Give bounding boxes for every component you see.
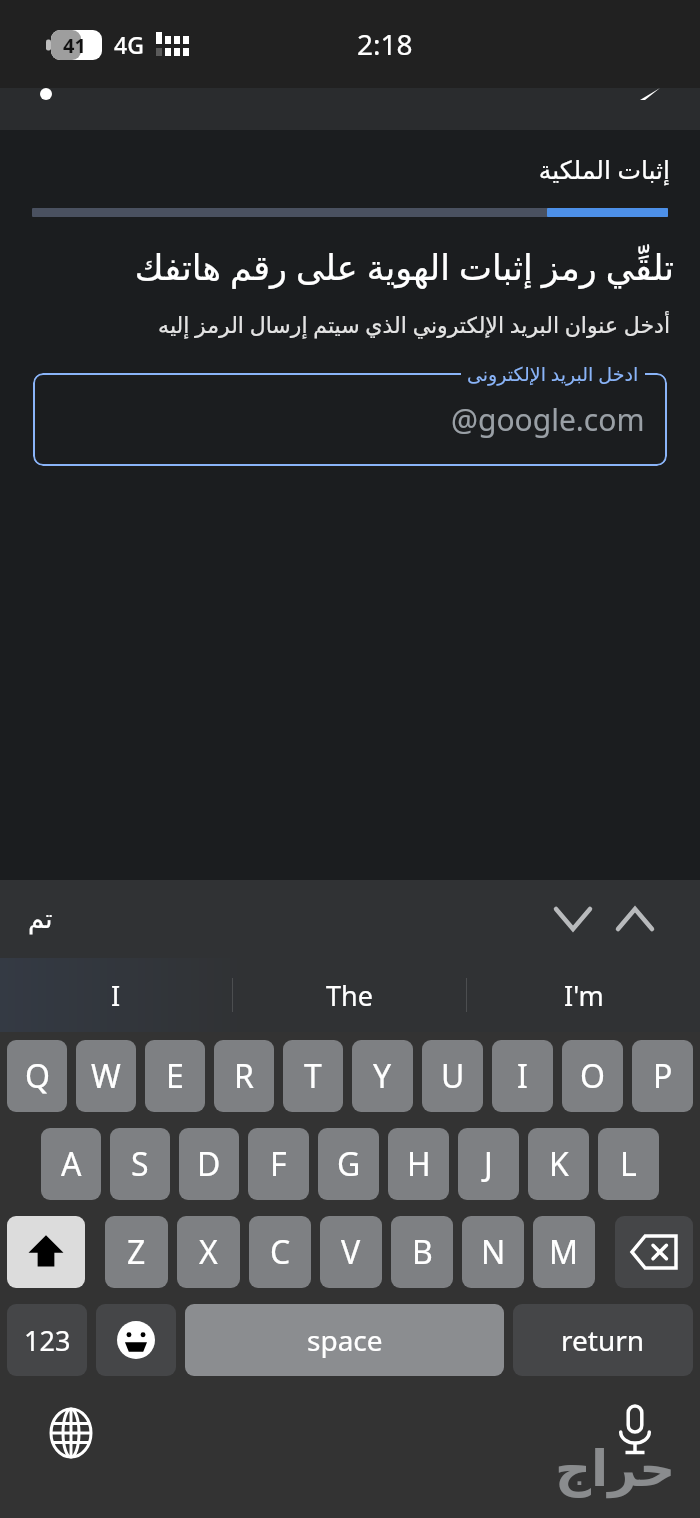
staticText: K <box>549 1142 569 1186</box>
button[interactable]: Z <box>105 1216 168 1288</box>
staticText: A <box>61 1142 82 1186</box>
staticText: ادخل البريد الإلكترونى <box>467 361 639 387</box>
button[interactable]: Shift <box>7 1216 85 1288</box>
staticText: D <box>197 1142 221 1186</box>
button[interactable]: B <box>391 1216 453 1288</box>
staticText: R <box>234 1054 254 1098</box>
button[interactable]: D <box>179 1128 239 1200</box>
button[interactable]: تم <box>14 896 67 942</box>
button[interactable]: Q <box>7 1040 67 1112</box>
staticText: P <box>653 1054 673 1098</box>
button[interactable]: Emoji <box>96 1304 176 1376</box>
button[interactable]: Next field <box>542 888 604 950</box>
button[interactable]: G <box>318 1128 379 1200</box>
staticText: S <box>131 1142 149 1186</box>
staticText: G <box>337 1142 361 1186</box>
staticText: أدخل عنوان البريد الإلكتروني الذي سيتم إ… <box>30 309 670 339</box>
staticText: J <box>484 1142 493 1186</box>
staticText: O <box>580 1054 605 1098</box>
staticText: Y <box>373 1054 392 1098</box>
staticText: C <box>270 1230 291 1274</box>
staticText: V <box>341 1230 361 1274</box>
button[interactable]: K <box>528 1128 589 1200</box>
button[interactable]: M <box>533 1216 595 1288</box>
button[interactable]: I <box>0 958 232 1032</box>
button[interactable]: R <box>214 1040 274 1112</box>
button[interactable]: H <box>388 1128 449 1200</box>
staticText: تلقِّي رمز إثبات الهوية على رقم هاتفك <box>26 243 674 291</box>
staticText: E <box>166 1054 184 1098</box>
button[interactable]: Previous field <box>604 888 666 950</box>
staticText: تم <box>28 904 53 934</box>
staticText: U <box>441 1054 465 1098</box>
staticText: space <box>307 1321 383 1359</box>
button[interactable]: return <box>513 1304 693 1376</box>
button[interactable]: T <box>283 1040 343 1112</box>
button[interactable]: P <box>632 1040 693 1112</box>
button[interactable]: Voice input <box>600 1396 670 1466</box>
staticText: X <box>199 1230 218 1274</box>
staticText: I <box>111 977 121 1014</box>
button[interactable]: F <box>248 1128 309 1200</box>
button[interactable]: O <box>562 1040 623 1112</box>
button[interactable]: The <box>233 958 466 1032</box>
staticText: return <box>561 1321 645 1359</box>
staticText: B <box>412 1230 433 1274</box>
button[interactable]: Change keyboard language <box>36 1398 106 1468</box>
staticText: 41 <box>63 32 86 59</box>
button[interactable]: E <box>145 1040 205 1112</box>
staticText: @google.com <box>451 399 645 440</box>
button[interactable]: W <box>76 1040 136 1112</box>
button[interactable]: @google.com <box>33 373 667 466</box>
staticText: حراج <box>555 1440 676 1498</box>
staticText: 2:18 <box>357 25 413 63</box>
button[interactable]: Backspace <box>615 1216 693 1288</box>
staticText: M <box>549 1230 579 1274</box>
button[interactable]: Y <box>352 1040 413 1112</box>
staticText: Z <box>127 1230 146 1274</box>
staticText: I <box>517 1054 528 1098</box>
button[interactable]: J <box>458 1128 519 1200</box>
staticText: Q <box>25 1054 50 1098</box>
button[interactable]: A <box>41 1128 101 1200</box>
staticText: I'm <box>564 977 604 1014</box>
button[interactable]: I <box>492 1040 553 1112</box>
staticText: 4G <box>114 29 144 60</box>
button[interactable]: L <box>598 1128 659 1200</box>
staticText: L <box>620 1142 637 1186</box>
button[interactable]: S <box>110 1128 170 1200</box>
staticText: N <box>481 1230 506 1274</box>
button[interactable]: N <box>462 1216 524 1288</box>
button[interactable]: C <box>249 1216 311 1288</box>
staticText: T <box>304 1054 322 1098</box>
staticText: The <box>326 977 373 1014</box>
button[interactable]: V <box>320 1216 382 1288</box>
button[interactable]: I'm <box>467 958 700 1032</box>
button[interactable]: X <box>177 1216 240 1288</box>
staticText: إثبات الملكية <box>0 152 670 186</box>
button[interactable]: space <box>185 1304 504 1376</box>
staticText: H <box>407 1142 431 1186</box>
button[interactable]: U <box>422 1040 483 1112</box>
staticText: F <box>270 1142 287 1186</box>
button[interactable]: 123 <box>7 1304 87 1376</box>
staticText: W <box>91 1054 121 1098</box>
staticText: 123 <box>24 1322 71 1359</box>
